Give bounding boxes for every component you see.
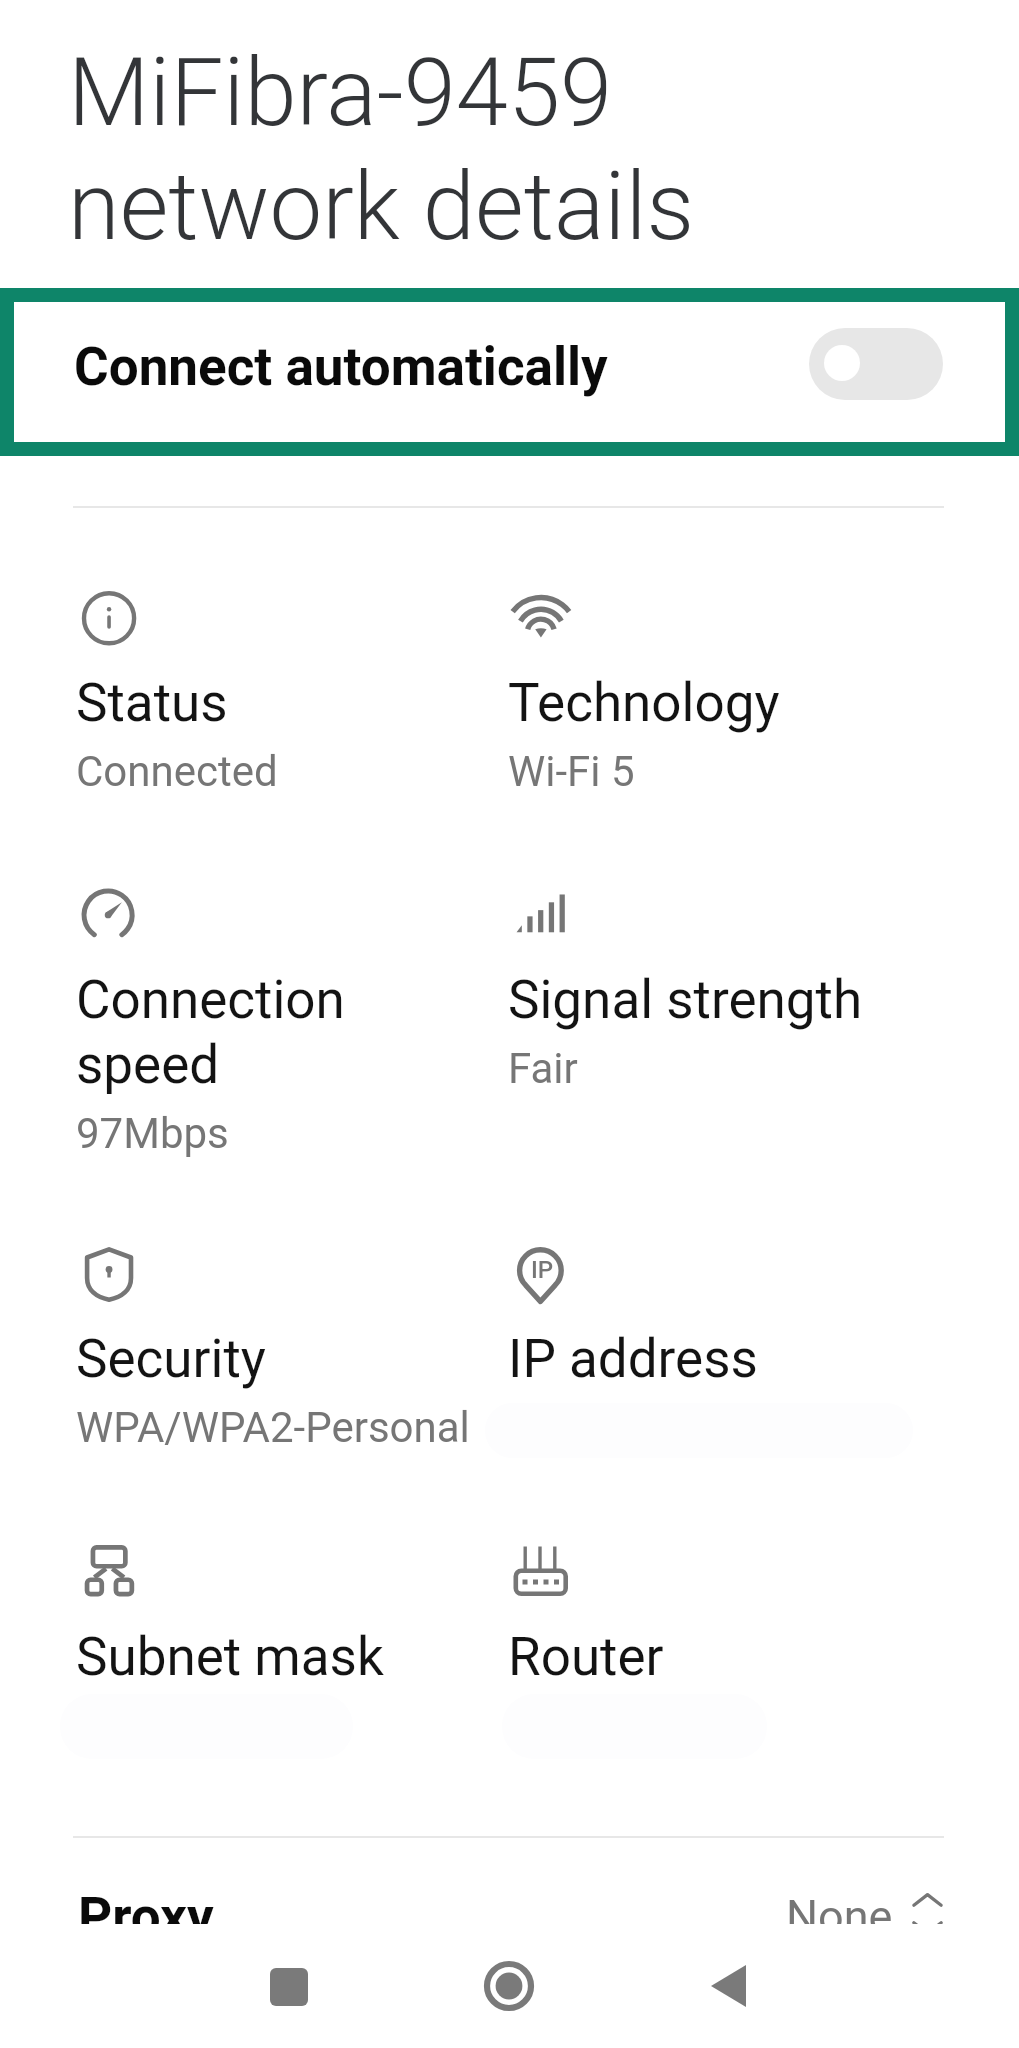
button[interactable]: Router [508,1545,948,1688]
button[interactable]: Signal strength [508,888,948,1093]
staticText: IP address [508,1328,758,1390]
staticText: Connected [76,747,278,796]
button[interactable]: Recents [270,1968,308,2006]
staticText: 97Mbps [76,1109,229,1158]
staticText: None [786,1890,893,1924]
button[interactable]: Technology [508,591,948,796]
button[interactable]: Connect automatically toggle [809,328,943,400]
button[interactable]: Back [711,1965,746,2007]
staticText: IP [531,1256,554,1284]
staticText: Fair [508,1044,578,1093]
staticText: Connect automatically [74,336,608,398]
button[interactable]: Security [76,1247,546,1452]
staticText: Signal strength [508,969,863,1031]
staticText: Status [76,672,228,734]
button[interactable]: Connect automatically [14,302,1005,442]
button[interactable]: Home [481,1958,537,2014]
button[interactable]: Connection speed [76,888,476,1158]
button[interactable]: Proxy [78,1851,943,1924]
staticText: Security [76,1328,266,1390]
button[interactable]: Status [76,591,496,796]
staticText: Proxy [78,1886,214,1924]
staticText: Connection speed [76,969,345,1096]
staticText: Router [508,1626,664,1688]
staticText: Wi-Fi 5 [508,747,635,796]
staticText: MiFibra-9459 network details [68,38,695,262]
staticText: Subnet mask [76,1626,384,1688]
button[interactable]: Subnet mask [76,1545,496,1688]
button[interactable]: IP address [508,1247,948,1390]
staticText: WPA/WPA2-Personal [76,1403,470,1452]
staticText: Technology [508,672,780,734]
